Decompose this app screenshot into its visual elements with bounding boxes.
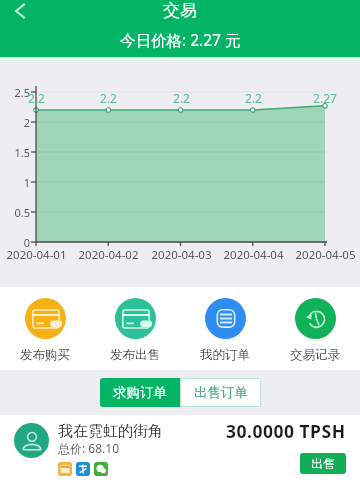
staticText: 2020-04-03 xyxy=(151,247,212,263)
button[interactable]: 出售 xyxy=(300,453,346,474)
staticText: 0.5 xyxy=(14,205,30,220)
staticText: 今日价格: 2.27 元 xyxy=(120,29,241,50)
staticText: 2020-04-01 xyxy=(6,247,67,263)
staticText: 2 xyxy=(23,115,30,130)
button[interactable]: 我的订单 xyxy=(180,287,270,370)
button[interactable]: 发布购买 xyxy=(0,287,90,370)
button[interactable]: 发布出售 xyxy=(90,287,180,370)
staticText: 出售 xyxy=(311,456,335,471)
staticText: 2020-04-02 xyxy=(78,247,139,263)
button[interactable]: 交易记录 xyxy=(270,287,360,370)
staticText: 2.27 xyxy=(313,90,337,106)
button[interactable]: Back xyxy=(0,0,40,22)
staticText: 我的订单 xyxy=(200,347,250,363)
staticText: 总价: 68.10 xyxy=(58,440,120,456)
staticText: 我在霓虹的街角 xyxy=(58,422,163,441)
button[interactable]: 求购订单 xyxy=(100,378,180,407)
staticText: 2.2 xyxy=(100,90,117,106)
staticText: 2.2 xyxy=(173,90,190,106)
staticText: 2020-04-05 xyxy=(295,247,356,263)
staticText: 发布出售 xyxy=(110,347,160,363)
button[interactable]: 出售订单 xyxy=(180,378,261,407)
staticText: 30.0000 TPSH xyxy=(226,419,346,443)
staticText: 2.2 xyxy=(245,90,262,106)
staticText: 1.5 xyxy=(14,145,30,160)
staticText: 1 xyxy=(23,175,30,190)
button[interactable]: 我在霓虹的街角 xyxy=(0,415,360,489)
staticText: 0 xyxy=(23,235,30,250)
staticText: 2.5 xyxy=(14,85,30,100)
staticText: 2.2 xyxy=(28,90,45,106)
staticText: 交易记录 xyxy=(290,347,340,363)
staticText: 求购订单 xyxy=(113,384,167,401)
staticText: 2020-04-04 xyxy=(223,247,284,263)
staticText: 发布购买 xyxy=(20,347,70,363)
staticText: 交易 xyxy=(163,0,197,21)
staticText: 出售订单 xyxy=(194,384,248,401)
